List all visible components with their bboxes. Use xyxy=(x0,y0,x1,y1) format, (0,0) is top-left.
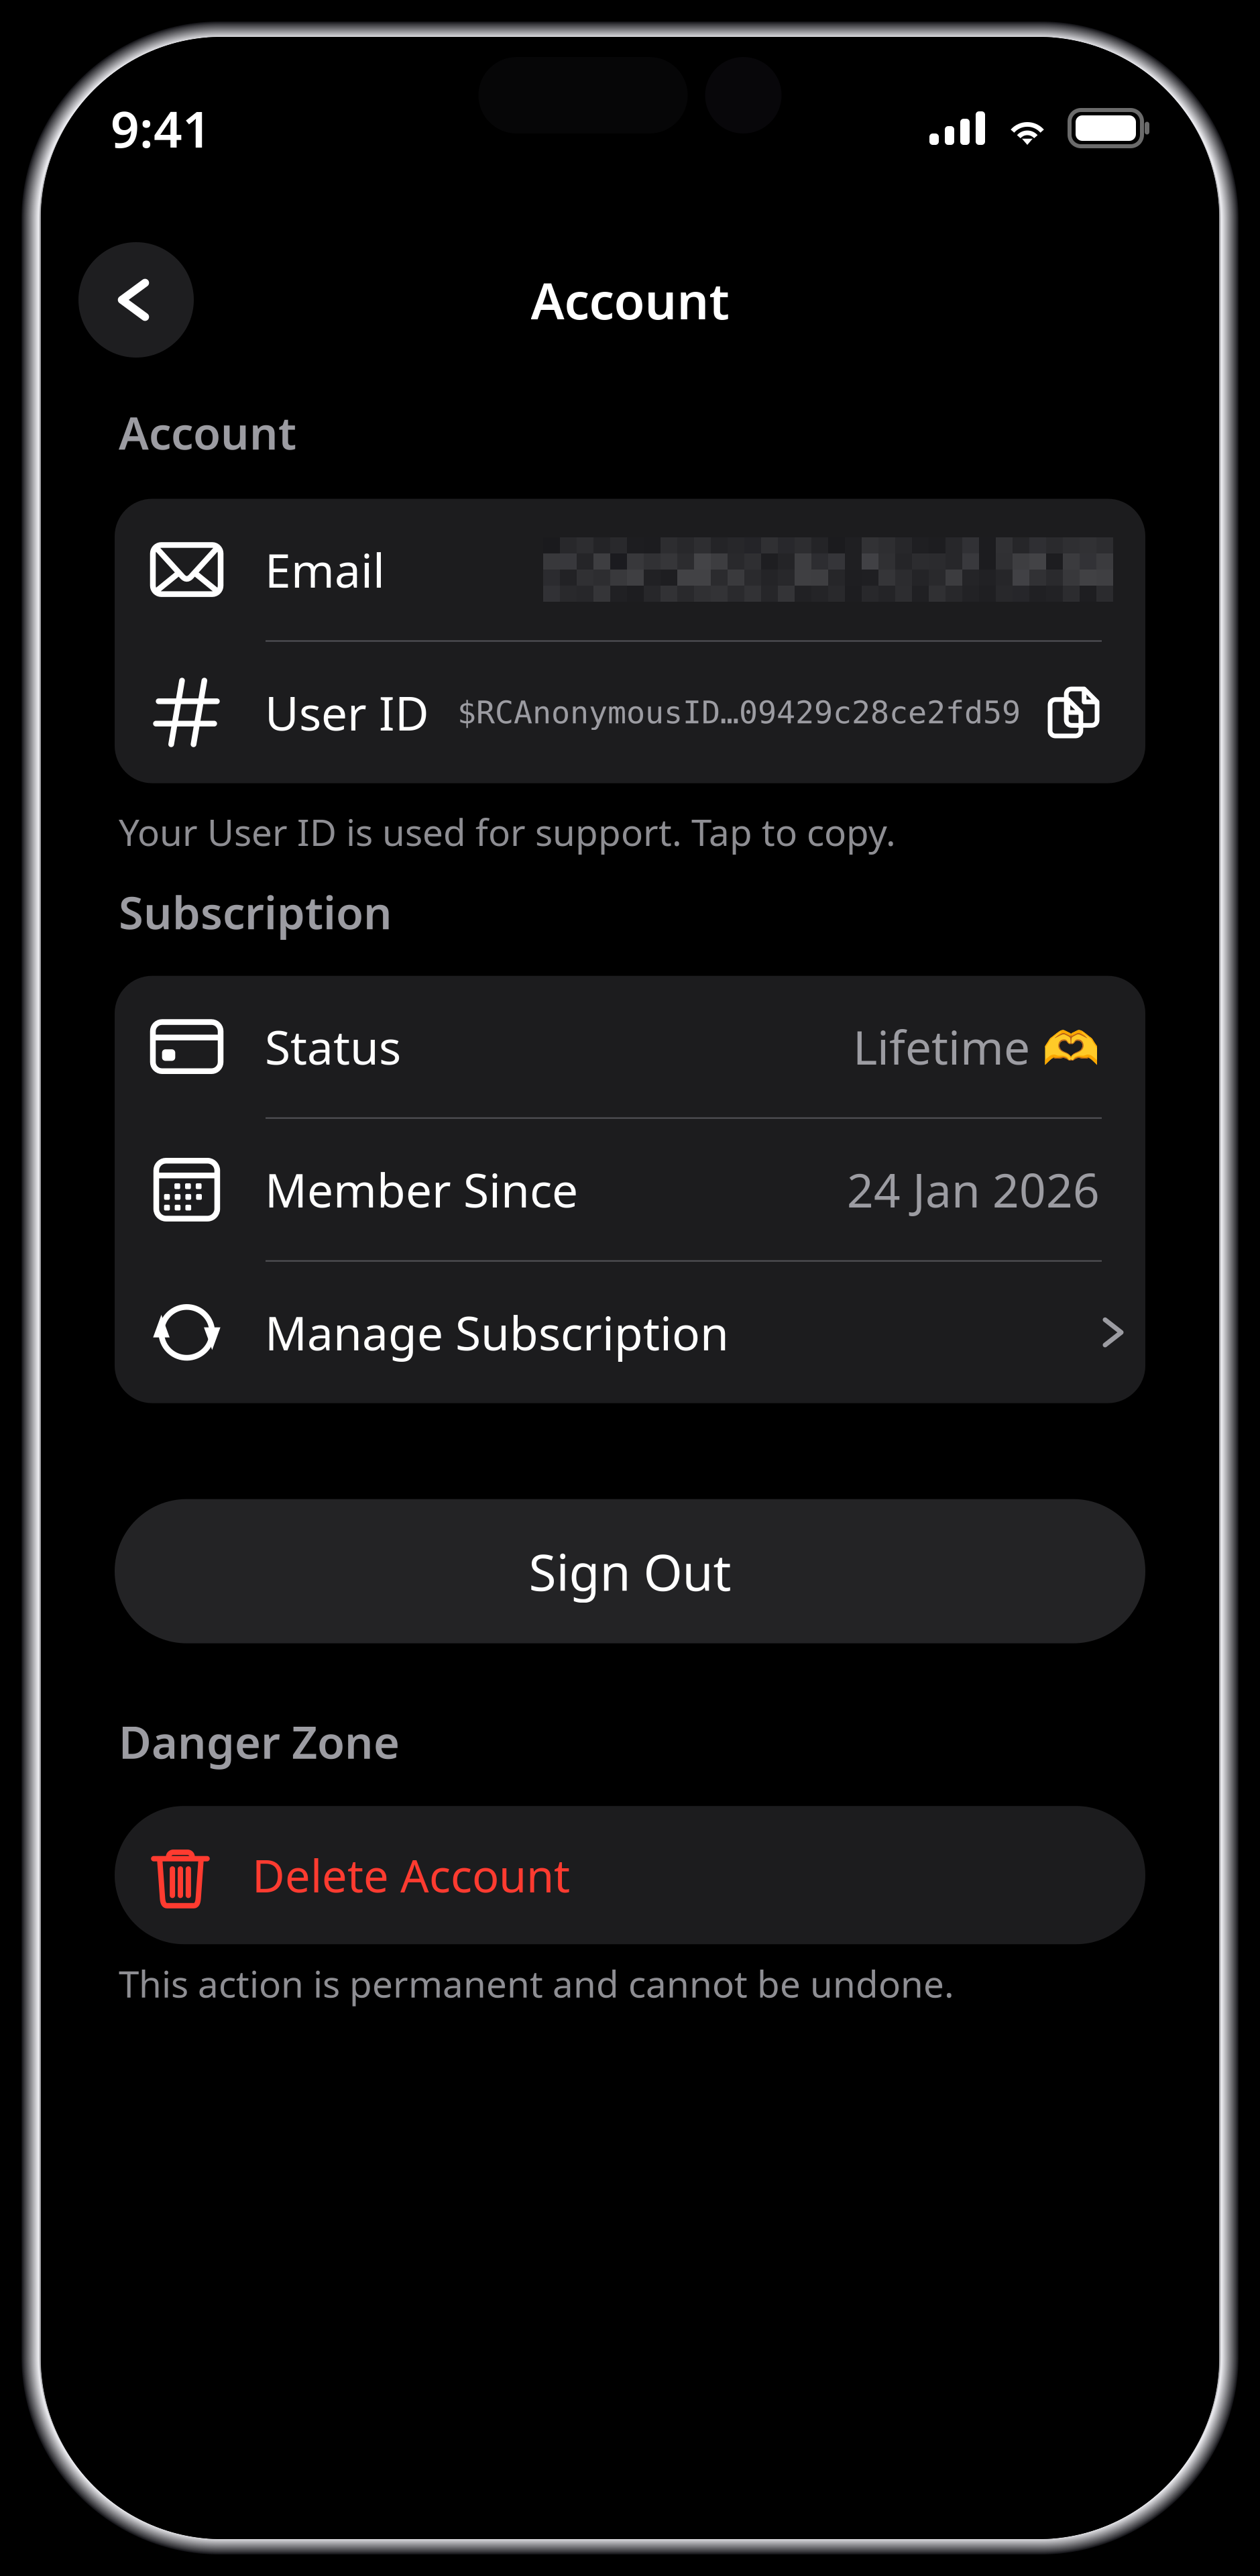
staticText: Delete Account xyxy=(252,1845,570,1905)
staticText: Account xyxy=(119,402,296,462)
staticText: Account xyxy=(531,267,729,333)
staticText: Email xyxy=(265,539,385,600)
staticText: Status xyxy=(265,1016,401,1077)
staticText: Manage Subscription xyxy=(265,1301,729,1363)
staticText: Danger Zone xyxy=(119,1712,400,1771)
button[interactable]: Sign Out xyxy=(115,1499,1145,1643)
button[interactable]: Back xyxy=(78,242,194,358)
staticText: Member Since xyxy=(265,1159,578,1220)
staticText: Subscription xyxy=(119,882,392,942)
staticText: 24 Jan 2026 xyxy=(847,1159,1100,1220)
button[interactable]: Delete Account xyxy=(115,1806,1145,1944)
staticText: 9:41 xyxy=(111,95,211,161)
button[interactable]: User ID xyxy=(115,642,1145,783)
button[interactable]: Manage Subscription xyxy=(115,1262,1145,1403)
staticText: $RCAnonymousID…09429c28ce2fd59 xyxy=(457,695,1021,730)
staticText: This action is permanent and cannot be u… xyxy=(119,1959,954,2008)
staticText: Sign Out xyxy=(529,1538,731,1604)
staticText: User ID xyxy=(265,682,429,743)
staticText: Your User ID is used for support. Tap to… xyxy=(119,807,896,856)
staticText: Lifetime 🫶 xyxy=(853,1016,1100,1077)
